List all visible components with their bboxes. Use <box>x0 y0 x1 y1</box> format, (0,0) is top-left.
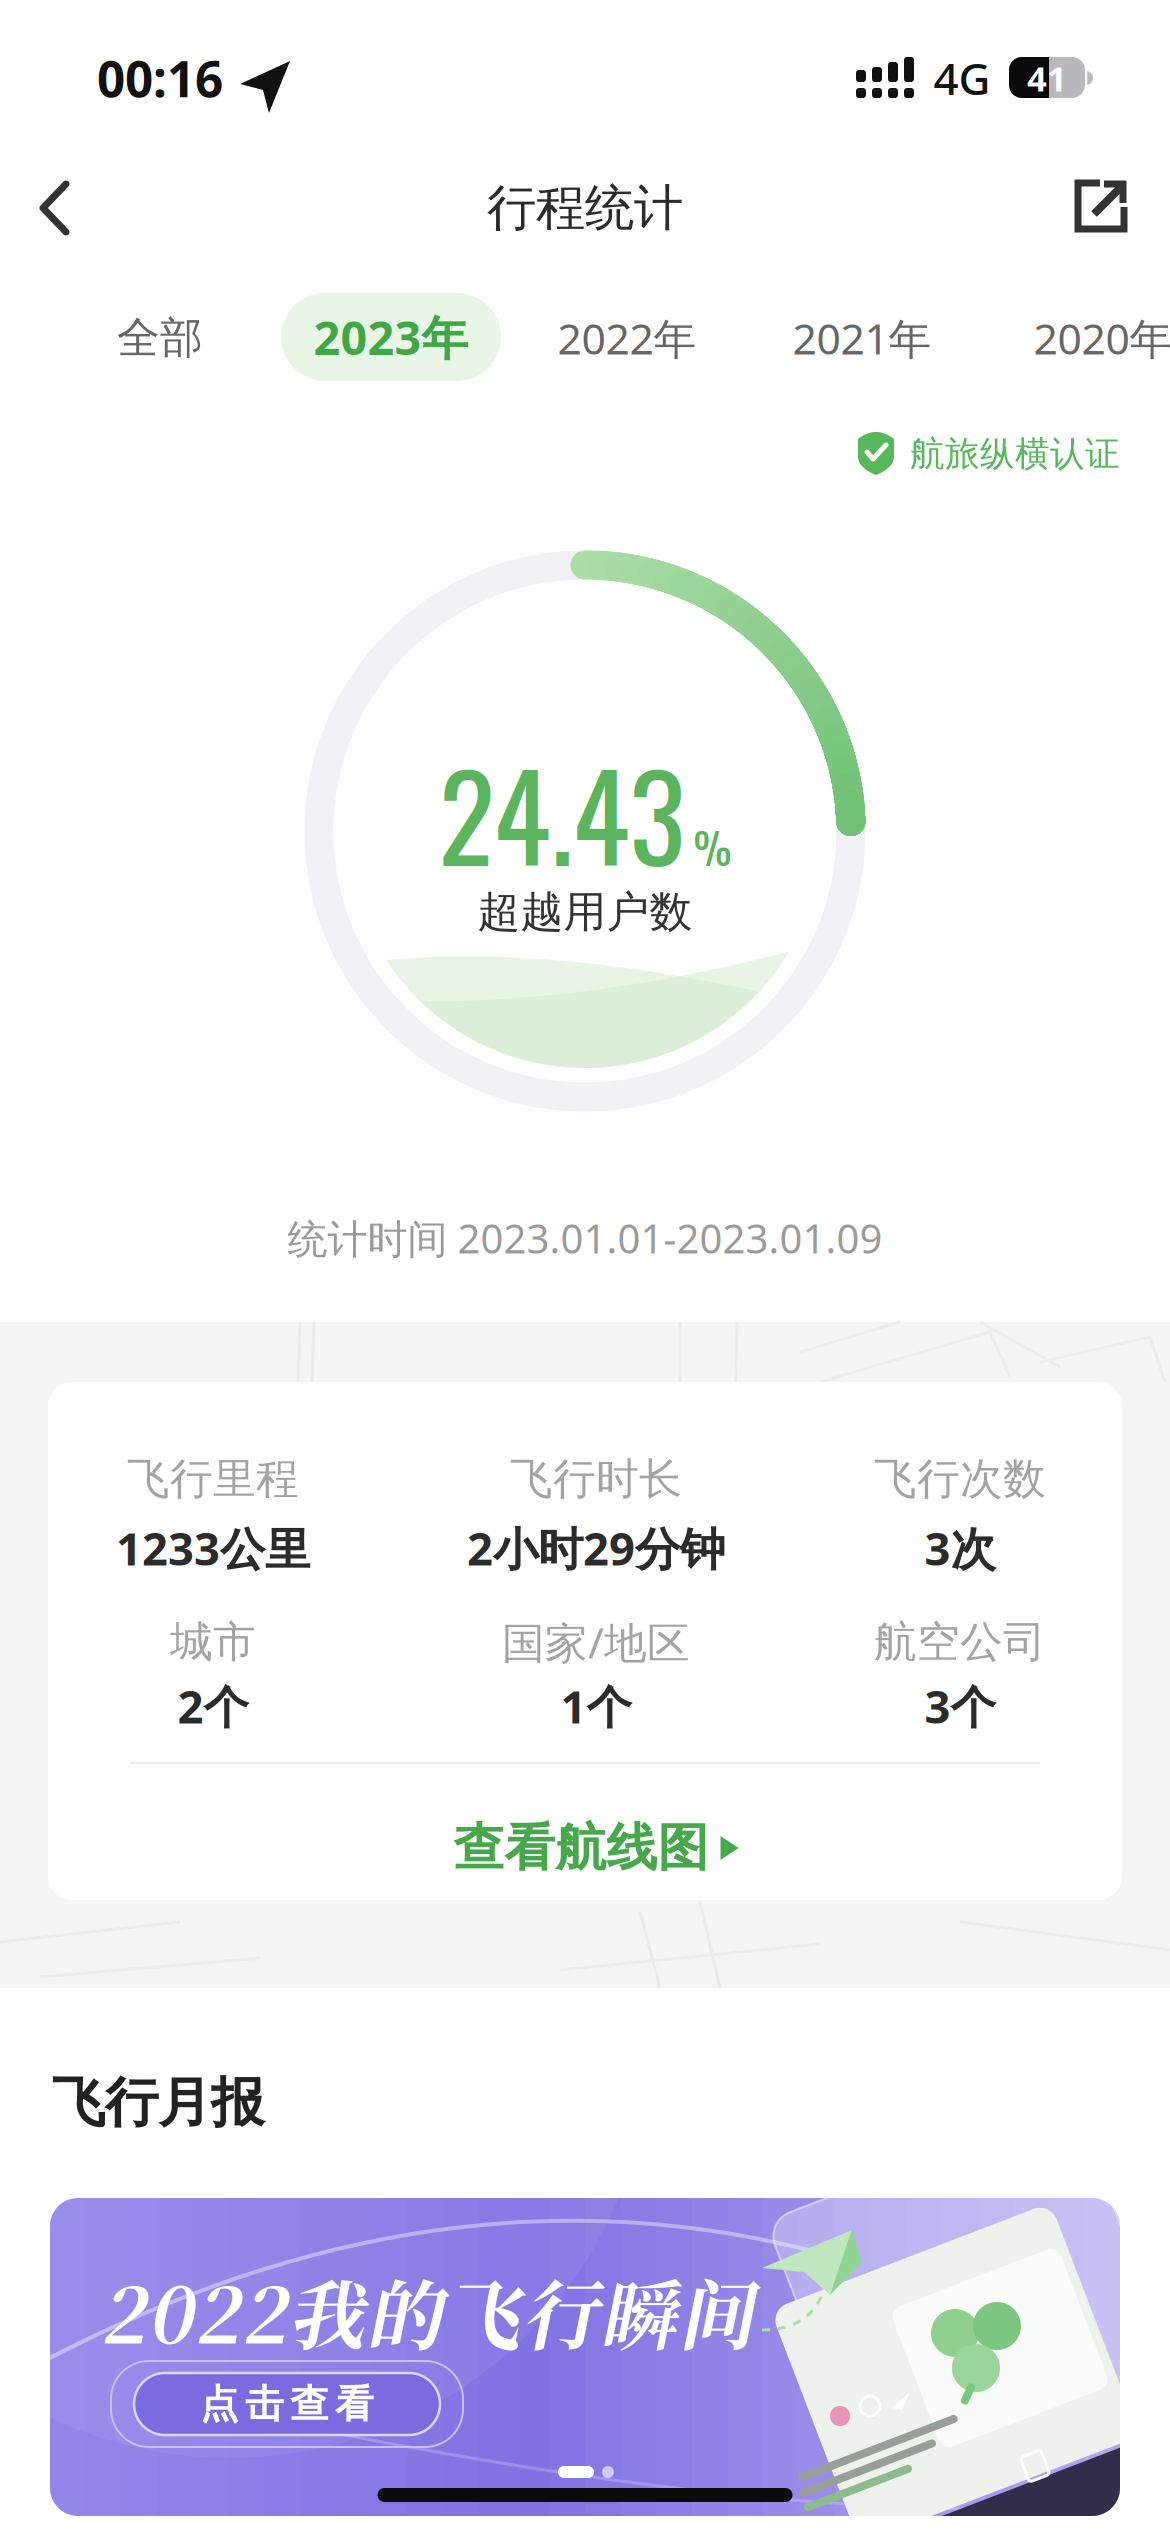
button[interactable]: 2022年 <box>517 293 737 383</box>
staticText: 国家/地区 <box>502 1614 690 1670</box>
button[interactable]: Share <box>1038 163 1128 253</box>
staticText: 行程统计 <box>487 178 683 238</box>
button[interactable]: 航旅纵横认证 <box>856 431 1120 477</box>
staticText: 2021年 <box>792 310 931 366</box>
button[interactable]: 查看航线图 <box>453 1803 742 1893</box>
staticText: 航旅纵横认证 <box>910 433 1120 475</box>
staticText: 点击查看 <box>200 2380 374 2428</box>
staticText: 飞行次数 <box>874 1453 1046 1505</box>
staticText: 超越用户数 <box>477 886 692 938</box>
staticText: 24.43 <box>438 726 685 900</box>
staticText: 41 <box>1027 55 1067 101</box>
staticText: 1233公里 <box>116 1518 310 1578</box>
staticText: 飞行里程 <box>127 1453 299 1505</box>
staticText: 2个 <box>177 1676 248 1736</box>
staticText: 4G <box>933 49 990 107</box>
staticText: 城市 <box>170 1616 256 1668</box>
staticText: % <box>693 815 731 878</box>
staticText: 00:16 <box>97 45 223 111</box>
staticText: 飞行时长 <box>510 1453 682 1505</box>
button[interactable]: 2020年 <box>993 293 1170 383</box>
button[interactable]: 全部 <box>70 293 250 383</box>
staticText: 航空公司 <box>874 1616 1046 1668</box>
staticText: 2020年 <box>1033 310 1170 366</box>
button[interactable]: 2021年 <box>752 293 972 383</box>
staticText: 查看航线图 <box>453 1817 708 1879</box>
button[interactable]: 2022我的飞行瞬间 <box>50 2198 1120 2516</box>
staticText: 3次 <box>924 1518 995 1578</box>
staticText: 2小时29分钟 <box>467 1518 725 1578</box>
staticText: 1个 <box>560 1676 631 1736</box>
button[interactable]: Back <box>8 163 98 253</box>
staticText: 全部 <box>117 312 203 364</box>
staticText: 2022我的飞行瞬间 <box>100 2256 754 2365</box>
button[interactable]: 2023年 <box>281 293 501 381</box>
staticText: 2022年 <box>557 310 696 366</box>
staticText: 飞行月报 <box>52 2070 264 2135</box>
staticText: 3个 <box>924 1676 995 1736</box>
staticText: 2023年 <box>313 306 468 368</box>
staticText: 统计时间 2023.01.01-2023.01.09 <box>287 1211 882 1264</box>
